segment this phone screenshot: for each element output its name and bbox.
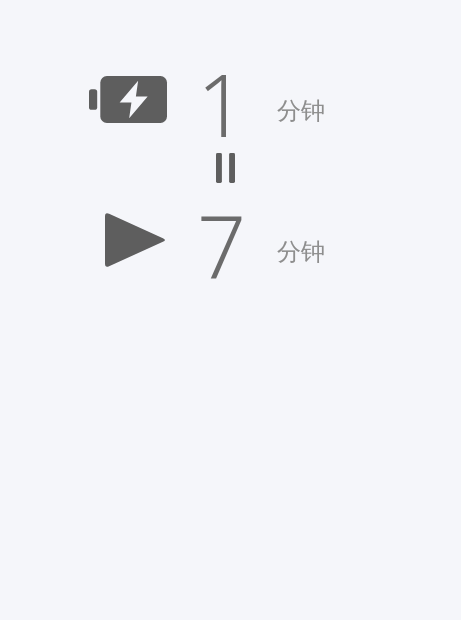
- button[interactable]: Playback time: [105, 212, 167, 268]
- staticText: 10: [197, 45, 277, 140]
- staticText: 70: [197, 186, 277, 281]
- button[interactable]: 10: [197, 45, 277, 140]
- staticText: 分钟: [277, 237, 325, 267]
- button[interactable]: Equals: [216, 153, 235, 183]
- button[interactable]: 分钟: [277, 96, 325, 126]
- button[interactable]: 分钟: [277, 237, 325, 267]
- staticText: 分钟: [277, 96, 325, 126]
- button[interactable]: Charging time: [89, 76, 167, 123]
- button[interactable]: 70: [197, 186, 277, 281]
